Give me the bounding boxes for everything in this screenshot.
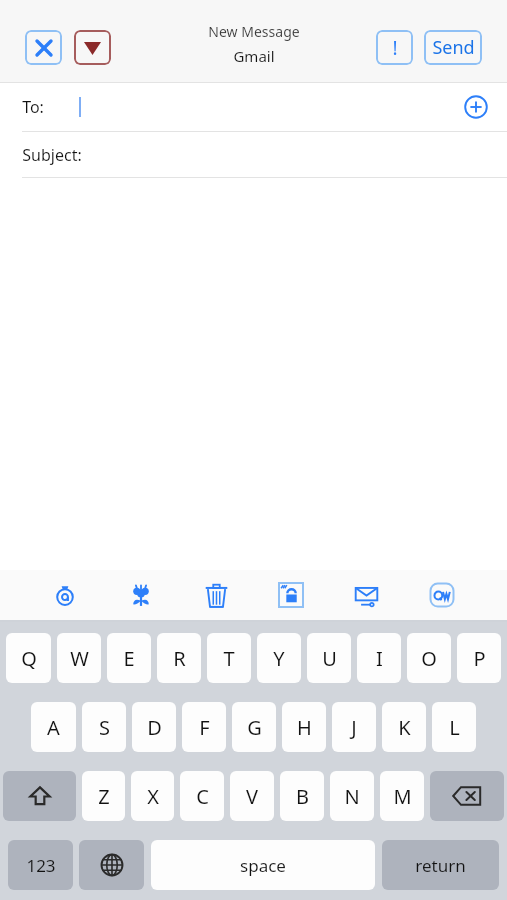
button[interactable]: Delete draft — [194, 573, 238, 617]
button[interactable]: Send — [424, 30, 482, 65]
button[interactable]: space — [151, 840, 375, 890]
staticText: G — [247, 714, 262, 741]
button[interactable]: G — [232, 702, 276, 752]
button[interactable]: L — [432, 702, 476, 752]
staticText: return — [415, 854, 466, 877]
staticText: T — [223, 645, 235, 672]
staticText: M — [393, 783, 412, 810]
staticText: I — [376, 645, 383, 672]
button[interactable]: H — [282, 702, 326, 752]
button[interactable]: Shift — [3, 771, 76, 821]
staticText: New Message — [208, 22, 300, 41]
button[interactable]: Add contact — [463, 94, 489, 120]
button[interactable]: Send mail — [344, 573, 388, 617]
staticText: L — [449, 714, 460, 741]
staticText: W — [70, 645, 89, 672]
staticText: O — [421, 645, 437, 672]
button[interactable]: T — [207, 633, 251, 683]
button[interactable]: A — [31, 702, 76, 752]
staticText: 123 — [26, 854, 56, 877]
staticText: P — [473, 645, 486, 672]
staticText: A — [47, 714, 60, 741]
button[interactable]: Quick word — [420, 573, 464, 617]
button[interactable]: Subject: — [0, 132, 507, 177]
button[interactable]: Insert email address — [43, 573, 87, 617]
staticText: D — [147, 714, 162, 741]
staticText: V — [246, 783, 258, 810]
button[interactable]: Backspace — [430, 771, 504, 821]
button[interactable]: Close — [25, 30, 62, 65]
button[interactable]: W — [57, 633, 101, 683]
staticText: C — [196, 783, 209, 810]
button[interactable]: F — [182, 702, 226, 752]
staticText: Q — [21, 645, 37, 672]
button[interactable]: Y — [257, 633, 301, 683]
button[interactable]: J — [332, 702, 376, 752]
staticText: Gmail — [233, 46, 275, 66]
button[interactable]: D — [132, 702, 176, 752]
button[interactable]: Switch language — [79, 840, 144, 890]
button[interactable]: Q — [6, 633, 51, 683]
button[interactable]: Mark important — [376, 30, 413, 65]
staticText: R — [173, 645, 186, 672]
button[interactable]: P — [457, 633, 501, 683]
staticText: F — [199, 714, 210, 741]
button[interactable]: E — [107, 633, 151, 683]
button[interactable]: Priority menu — [74, 30, 111, 65]
button[interactable]: 123 — [8, 840, 73, 890]
staticText: U — [322, 645, 337, 672]
button[interactable]: C — [180, 771, 224, 821]
staticText: N — [344, 783, 360, 810]
staticText: X — [147, 783, 159, 810]
staticText: Y — [273, 645, 285, 672]
staticText: J — [351, 714, 357, 741]
button[interactable]: N — [330, 771, 374, 821]
button[interactable]: Attach photo — [269, 573, 313, 617]
button[interactable]: return — [382, 840, 499, 890]
staticText: B — [296, 783, 309, 810]
staticText: Send — [432, 35, 475, 60]
staticText: Subject: — [22, 144, 82, 166]
button[interactable]: K — [382, 702, 426, 752]
button[interactable]: M — [380, 771, 424, 821]
button[interactable]: Insert image — [119, 573, 163, 617]
staticText: E — [123, 645, 135, 672]
staticText: K — [398, 714, 411, 741]
button[interactable]: U — [307, 633, 351, 683]
button[interactable]: R — [157, 633, 201, 683]
button[interactable]: B — [280, 771, 324, 821]
button[interactable]: Z — [82, 771, 125, 821]
button[interactable]: O — [407, 633, 451, 683]
staticText: To: — [22, 96, 44, 118]
button[interactable]: V — [230, 771, 274, 821]
staticText: H — [297, 714, 312, 741]
staticText: S — [99, 714, 110, 741]
staticText: ! — [392, 35, 398, 61]
staticText: Z — [98, 783, 110, 810]
button[interactable]: X — [131, 771, 174, 821]
staticText: space — [240, 854, 286, 877]
button[interactable]: S — [82, 702, 126, 752]
button[interactable]: I — [357, 633, 401, 683]
button[interactable]: To: — [0, 83, 507, 131]
